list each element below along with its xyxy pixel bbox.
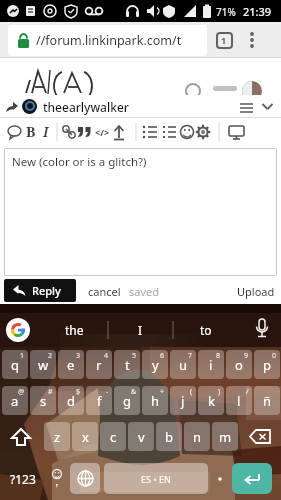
staticText: & xyxy=(131,387,137,397)
button[interactable]: o xyxy=(226,350,252,379)
button[interactable] xyxy=(210,463,230,494)
staticText: f xyxy=(97,392,102,410)
button[interactable]: b xyxy=(156,422,182,451)
staticText: theearlywalker xyxy=(43,99,129,115)
staticText: //forum.linkinpark.com/t xyxy=(36,32,182,49)
button[interactable]: the xyxy=(40,313,108,347)
staticText: $ xyxy=(76,387,81,397)
staticText: 21:39 xyxy=(243,4,272,19)
staticText: g xyxy=(123,392,131,410)
staticText: r xyxy=(96,356,102,374)
button[interactable]: q xyxy=(2,350,28,379)
staticText: / xyxy=(246,387,249,397)
button[interactable]: ES • EN xyxy=(104,463,208,494)
button[interactable] xyxy=(241,422,279,451)
button[interactable]: Reply xyxy=(4,279,76,302)
button[interactable] xyxy=(240,28,264,52)
staticText: 8 xyxy=(216,351,221,361)
staticText: </> xyxy=(95,126,110,138)
button[interactable]: //forum.linkinpark.com/t xyxy=(8,25,207,56)
button[interactable]: 1 xyxy=(212,28,236,52)
staticText: j xyxy=(181,392,185,410)
staticText: @ xyxy=(18,387,25,397)
staticText: New (color or is a glitch?) xyxy=(12,154,147,170)
staticText: h xyxy=(151,392,160,410)
button[interactable] xyxy=(46,463,68,494)
button[interactable]: h xyxy=(142,386,168,415)
button[interactable]: theearlywalker xyxy=(0,95,281,118)
button[interactable]: to xyxy=(173,313,238,347)
staticText: l xyxy=(237,392,241,410)
button[interactable]: m xyxy=(212,422,238,451)
staticText: 9 xyxy=(244,351,249,361)
button[interactable]: y xyxy=(142,350,168,379)
button[interactable] xyxy=(2,422,40,451)
staticText: z xyxy=(54,428,61,446)
button[interactable]: r xyxy=(86,350,112,379)
staticText: to xyxy=(200,322,212,338)
button[interactable]: x xyxy=(72,422,98,451)
staticText: 7 xyxy=(188,351,193,361)
staticText: Reply xyxy=(32,283,61,298)
staticText: 2 xyxy=(48,351,53,361)
button[interactable]: z xyxy=(44,422,70,451)
staticText: B xyxy=(26,122,36,141)
staticText: b xyxy=(165,428,173,446)
button[interactable]: New (color or is a glitch?) xyxy=(5,149,276,275)
staticText: ñ xyxy=(263,392,272,410)
button[interactable]: n xyxy=(184,422,210,451)
button[interactable]: Upload xyxy=(237,284,275,299)
staticText: I xyxy=(43,122,49,141)
staticText: 71% xyxy=(216,5,236,19)
staticText: ( xyxy=(190,387,193,397)
button[interactable]: u xyxy=(170,350,196,379)
staticText: q xyxy=(11,356,19,374)
button[interactable]: d xyxy=(58,386,84,415)
staticText: n xyxy=(193,428,202,446)
button[interactable] xyxy=(6,318,30,342)
button[interactable]: i xyxy=(198,350,224,379)
button[interactable] xyxy=(70,463,100,494)
staticText: ?123 xyxy=(10,471,36,487)
button[interactable]: ñ xyxy=(254,386,280,415)
button[interactable]: k xyxy=(198,386,224,415)
staticText: + xyxy=(160,387,165,397)
button[interactable]: t xyxy=(114,350,140,379)
staticText: ES • EN xyxy=(141,473,171,485)
staticText: ) xyxy=(218,387,221,397)
button[interactable]: I xyxy=(108,313,173,347)
button[interactable]: cancel xyxy=(88,284,121,299)
staticText: 3 xyxy=(76,351,81,361)
button[interactable]: l xyxy=(226,386,252,415)
staticText: t xyxy=(125,356,130,374)
staticText: v xyxy=(138,428,145,446)
staticText: a xyxy=(11,392,19,410)
staticText: s xyxy=(40,392,47,410)
staticText: u xyxy=(179,356,188,374)
button[interactable]: a xyxy=(2,386,28,415)
button[interactable]: j xyxy=(170,386,196,415)
staticText: o xyxy=(235,356,243,374)
staticText: # xyxy=(48,387,53,397)
staticText: 5 xyxy=(132,351,137,361)
staticText: y xyxy=(152,356,159,374)
button[interactable]: s xyxy=(30,386,56,415)
button[interactable]: p xyxy=(254,350,280,379)
button[interactable]: g xyxy=(114,386,140,415)
staticText: - xyxy=(106,387,109,397)
staticText: 1 xyxy=(20,351,25,361)
button[interactable]: ?123 xyxy=(2,463,44,494)
staticText: saved xyxy=(129,284,159,299)
staticText: d xyxy=(67,392,75,410)
button[interactable]: c xyxy=(100,422,126,451)
staticText: 1 xyxy=(221,34,227,46)
staticText: 0 xyxy=(272,351,277,361)
staticText: i xyxy=(209,356,213,374)
button[interactable]: f xyxy=(86,386,112,415)
button[interactable] xyxy=(246,313,281,347)
button[interactable]: w xyxy=(30,350,56,379)
staticText: k xyxy=(208,392,215,410)
button[interactable]: v xyxy=(128,422,154,451)
button[interactable] xyxy=(232,463,272,494)
button[interactable]: e xyxy=(58,350,84,379)
